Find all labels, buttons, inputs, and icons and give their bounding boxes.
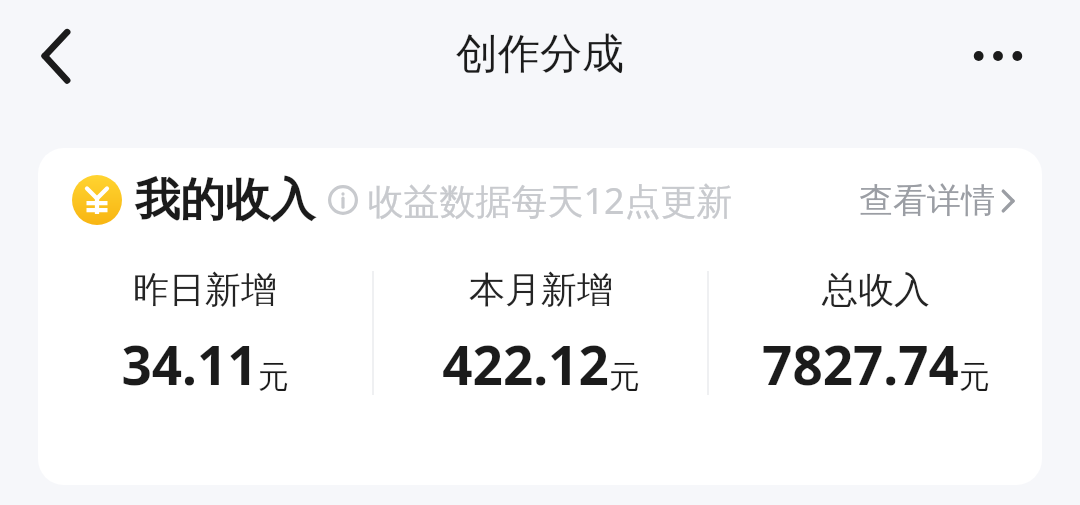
staticText: 创作分成 bbox=[456, 28, 624, 81]
button[interactable]: 查看详情 bbox=[853, 169, 1022, 232]
button[interactable]: 本月新增 bbox=[374, 248, 707, 418]
staticText: 7827.74 bbox=[762, 328, 959, 400]
staticText: 昨日新增 bbox=[133, 267, 277, 312]
button[interactable]: 总收入 bbox=[709, 248, 1042, 418]
button[interactable]: More options bbox=[948, 18, 1048, 94]
staticText: 查看详情 bbox=[859, 179, 995, 222]
button[interactable]: Back bbox=[19, 18, 95, 94]
staticText: 本月新增 bbox=[469, 267, 613, 312]
button[interactable]: 昨日新增 bbox=[38, 248, 372, 418]
staticText: 元 bbox=[959, 357, 990, 396]
staticText: 我的收入 bbox=[135, 172, 315, 229]
staticText: 422.12 bbox=[442, 328, 609, 400]
staticText: 总收入 bbox=[822, 267, 930, 312]
staticText: 元 bbox=[258, 357, 289, 396]
staticText: 34.11 bbox=[121, 328, 258, 400]
staticText: 元 bbox=[609, 357, 640, 396]
staticText: 收益数据每天12点更新 bbox=[367, 176, 733, 225]
